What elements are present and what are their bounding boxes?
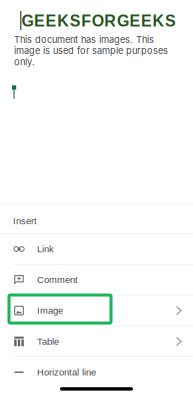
staticText: Insert <box>13 216 37 226</box>
button[interactable]: Horizontal line <box>0 357 193 387</box>
staticText: Image <box>37 305 63 316</box>
button[interactable]: Table <box>0 326 193 356</box>
staticText: Table <box>37 336 59 347</box>
button[interactable]: Image <box>0 296 193 326</box>
staticText: Link <box>37 244 54 254</box>
staticText: GEEKSFORGEEKS <box>21 12 176 30</box>
staticText: Horizontal line <box>37 367 96 377</box>
staticText: This document has images. This image is … <box>14 34 168 67</box>
button[interactable]: Link <box>0 234 193 264</box>
button[interactable]: Comment <box>0 265 193 295</box>
staticText: Comment <box>37 275 78 285</box>
